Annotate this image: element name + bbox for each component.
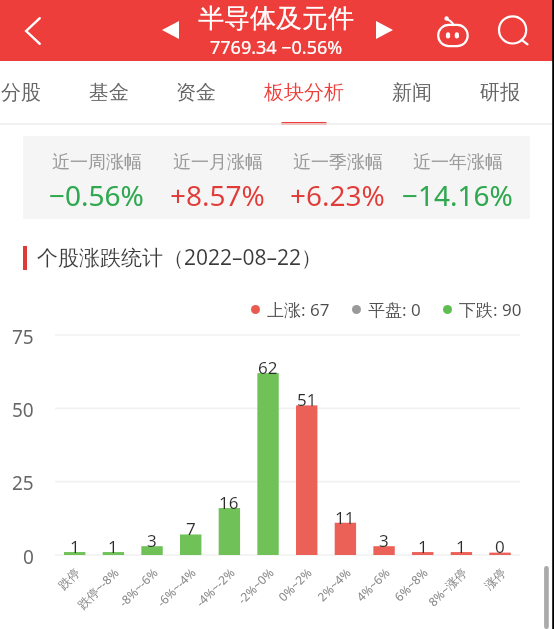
staticText: 8%~涨停 xyxy=(424,564,470,610)
staticText: 下跌: 90 xyxy=(459,298,522,321)
staticText: 跌停~-8% xyxy=(73,564,122,612)
button[interactable]: 资金 xyxy=(161,61,231,124)
button[interactable]: 成分股 xyxy=(0,61,46,124)
staticText: 75 xyxy=(12,324,34,350)
staticText: 51 xyxy=(297,388,317,410)
staticText: 半导体及元件 xyxy=(198,2,354,35)
staticText: +6.23% xyxy=(290,176,385,214)
staticText: 平盘: 0 xyxy=(368,298,421,321)
button[interactable]: 板块分析 xyxy=(256,61,352,124)
button[interactable]: Search xyxy=(490,8,534,52)
staticText: 上涨: 67 xyxy=(267,298,330,321)
staticText: −0.56% xyxy=(49,176,144,214)
staticText: 近一周涨幅 xyxy=(52,151,142,174)
staticText: 基金 xyxy=(89,80,129,105)
staticText: 成分股 xyxy=(0,80,41,105)
staticText: 研报 xyxy=(480,80,520,105)
staticText: 近一年涨幅 xyxy=(413,151,503,174)
staticText: 25 xyxy=(12,470,34,496)
staticText: 资金 xyxy=(176,80,216,105)
staticText: −14.16% xyxy=(402,176,513,214)
staticText: +8.57% xyxy=(170,176,265,214)
staticText: 7 xyxy=(186,517,196,539)
staticText: 1 xyxy=(108,535,118,557)
staticText: 近一月涨幅 xyxy=(173,151,263,174)
staticText: 0%~2% xyxy=(274,564,315,605)
staticText: 0 xyxy=(495,535,505,557)
staticText: 7769.34 −0.56% xyxy=(210,35,343,60)
staticText: 个股涨跌统计（2022–08–22） xyxy=(37,243,323,272)
staticText: 1 xyxy=(70,535,80,557)
staticText: 板块分析 xyxy=(264,80,344,105)
staticText: 3 xyxy=(379,529,389,551)
staticText: 1 xyxy=(456,535,466,557)
staticText: -8%~-6% xyxy=(115,564,161,610)
staticText: 新闻 xyxy=(392,80,432,105)
staticText: 6%~8% xyxy=(390,564,431,605)
button[interactable]: 新闻 xyxy=(377,61,447,124)
staticText: -6%~-4% xyxy=(153,564,199,610)
button[interactable]: 研报 xyxy=(465,61,535,124)
button[interactable]: Next sector xyxy=(368,13,401,47)
staticText: 11 xyxy=(335,506,355,528)
staticText: 62 xyxy=(258,356,278,378)
staticText: 3 xyxy=(147,529,157,551)
staticText: 2%~4% xyxy=(313,564,354,605)
button[interactable]: Assistant xyxy=(432,8,472,52)
staticText: 16 xyxy=(219,491,239,513)
staticText: 50 xyxy=(12,397,34,423)
staticText: 4%~6% xyxy=(352,564,393,605)
staticText: 1 xyxy=(418,535,428,557)
staticText: -2%~0% xyxy=(233,564,277,607)
staticText: 近一季涨幅 xyxy=(293,151,383,174)
staticText: 涨停 xyxy=(481,565,509,593)
staticText: 0 xyxy=(23,544,34,570)
button[interactable]: Previous sector xyxy=(154,13,187,47)
staticText: -4%~-2% xyxy=(192,564,238,610)
staticText: 跌停 xyxy=(55,565,83,593)
button[interactable]: 基金 xyxy=(74,61,144,124)
button[interactable]: Back xyxy=(12,5,54,57)
